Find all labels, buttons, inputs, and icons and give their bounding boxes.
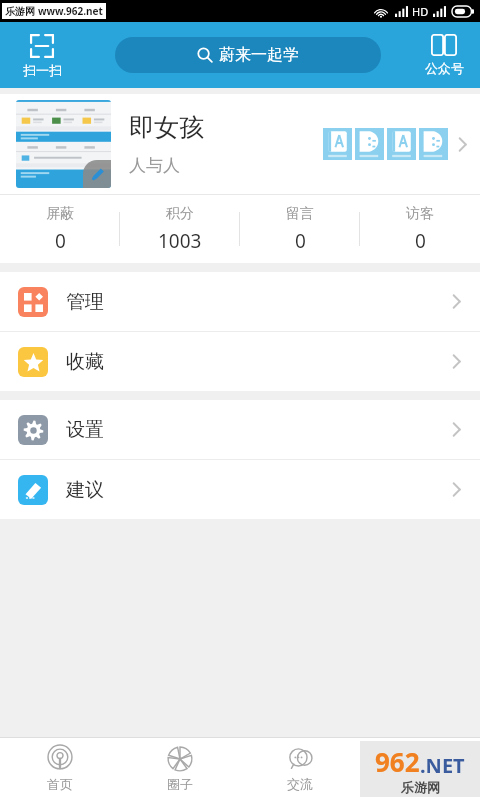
staticText: 留言 — [286, 205, 314, 223]
button[interactable]: 蔚来一起学 — [115, 37, 381, 73]
staticText: 公众号 — [425, 60, 464, 76]
staticText: 人与人 — [129, 155, 180, 176]
button[interactable]: 屏蔽 — [0, 195, 120, 263]
staticText: 乐游网 — [5, 5, 35, 18]
button[interactable]: 设置 — [0, 400, 480, 459]
button[interactable]: 首页 — [0, 738, 120, 800]
staticText: HD — [412, 4, 429, 19]
staticText: 蔚来一起学 — [219, 45, 299, 65]
staticText: 设置 — [66, 418, 104, 442]
staticText: 首页 — [47, 776, 73, 792]
staticText: 1003 — [158, 228, 202, 254]
staticText: 962 — [375, 744, 420, 779]
button[interactable]: 圈子 — [120, 738, 240, 800]
button[interactable]: Edit avatar — [83, 160, 111, 188]
button[interactable]: Edit avatar — [0, 94, 480, 194]
button[interactable]: 留言 — [240, 195, 360, 263]
button[interactable]: 我的 — [360, 738, 480, 800]
staticText: 交流 — [287, 776, 313, 792]
button[interactable]: 收藏 — [0, 332, 480, 391]
button[interactable]: 管理 — [0, 272, 480, 331]
staticText: 圈子 — [167, 776, 193, 792]
staticText: 乐游网 — [401, 779, 440, 795]
button[interactable]: 公众号 — [408, 22, 480, 88]
button[interactable]: 积分 — [120, 195, 240, 263]
staticText: 访客 — [406, 205, 434, 223]
staticText: 收藏 — [66, 350, 104, 374]
staticText: .NET — [420, 752, 465, 779]
staticText: 建议 — [66, 478, 104, 502]
button[interactable]: 访客 — [360, 195, 480, 263]
staticText: 0 — [295, 228, 306, 254]
staticText: www.962.net — [38, 4, 103, 18]
button[interactable]: 建议 — [0, 460, 480, 519]
staticText: 0 — [55, 228, 66, 254]
staticText: 扫一扫 — [23, 62, 62, 78]
staticText: 管理 — [66, 290, 104, 314]
button[interactable]: 扫一扫 — [0, 22, 84, 88]
staticText: 积分 — [166, 205, 194, 223]
staticText: 屏蔽 — [46, 205, 74, 223]
button[interactable]: 交流 — [240, 738, 360, 800]
staticText: 0 — [415, 228, 426, 254]
staticText: 即女孩 — [129, 112, 204, 143]
